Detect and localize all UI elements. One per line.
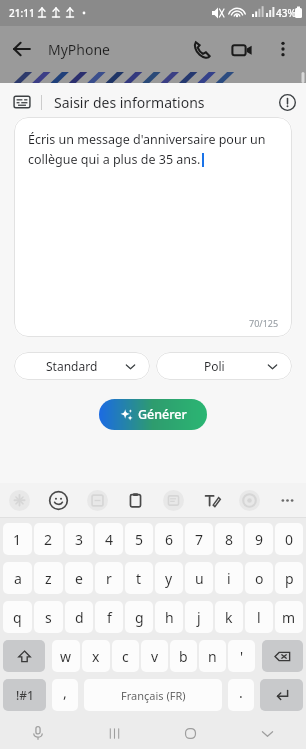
button[interactable]: Poli (156, 352, 292, 380)
button[interactable]: m (275, 601, 303, 633)
staticText: s (45, 608, 52, 627)
button[interactable]: r (95, 562, 123, 594)
button[interactable]: z (34, 562, 63, 594)
button[interactable]: n (199, 640, 226, 672)
staticText: , (63, 683, 67, 702)
button[interactable]: f (95, 601, 123, 633)
button[interactable]: Information (279, 94, 296, 111)
staticText: . (239, 683, 243, 702)
button[interactable]: ' (228, 640, 255, 672)
button[interactable]: s (34, 601, 63, 633)
staticText: h (165, 608, 174, 627)
button[interactable]: Sticker (78, 483, 116, 517)
staticText: i (227, 569, 231, 588)
button[interactable]: t (125, 562, 153, 594)
button[interactable]: d (65, 601, 93, 633)
button[interactable]: 2 (34, 523, 63, 555)
button[interactable]: 5 (125, 523, 153, 555)
button[interactable]: k (215, 601, 243, 633)
staticText: collègue qui a plus de 35 ans. (28, 151, 201, 168)
button[interactable]: j (185, 601, 213, 633)
button[interactable]: More options (272, 38, 294, 60)
button[interactable]: Clipboard (116, 483, 154, 517)
button[interactable]: w (52, 640, 80, 672)
button[interactable]: y (155, 562, 183, 594)
button[interactable]: . (228, 679, 254, 711)
button[interactable]: Home (152, 717, 229, 749)
button[interactable]: Settings (230, 483, 268, 517)
button[interactable]: Call (190, 37, 214, 61)
button[interactable]: Emoji (39, 483, 78, 517)
button[interactable]: 6 (155, 523, 183, 555)
staticText: Français (FR) (121, 688, 186, 703)
staticText: Poli (204, 358, 225, 374)
staticText: 8 (225, 530, 234, 549)
staticText: Écris un message d'anniversaire pour un (28, 131, 266, 148)
button[interactable]: h (155, 601, 183, 633)
staticText: l (257, 608, 261, 627)
staticText: 4 (105, 530, 114, 549)
button[interactable]: , (52, 679, 78, 711)
staticText: Standard (46, 358, 98, 374)
button[interactable]: 9 (245, 523, 273, 555)
staticText: q (13, 608, 22, 627)
button[interactable]: Shift (3, 640, 45, 672)
button[interactable]: 7 (185, 523, 213, 555)
button[interactable]: Écris un message d'anniversaire pour un (14, 117, 292, 337)
staticText: d (75, 608, 84, 627)
button[interactable]: i (215, 562, 243, 594)
button[interactable]: Voice input (0, 717, 76, 749)
staticText: 5 (135, 530, 144, 549)
button[interactable]: Hide keyboard (229, 717, 306, 749)
staticText: 1 (13, 530, 22, 549)
button[interactable]: c (112, 640, 139, 672)
button[interactable]: q (3, 601, 32, 633)
button[interactable]: 1 (3, 523, 32, 555)
button[interactable]: Recent apps (76, 717, 152, 749)
button[interactable]: e (65, 562, 93, 594)
button[interactable]: p (275, 562, 303, 594)
staticText: 21:11 (9, 6, 35, 20)
button[interactable]: Back (8, 35, 36, 63)
staticText: 0 (285, 530, 294, 549)
button[interactable]: 0 (275, 523, 303, 555)
button[interactable]: o (245, 562, 273, 594)
button[interactable]: Générer (99, 399, 207, 430)
button[interactable]: 3 (65, 523, 93, 555)
staticText: 7 (195, 530, 204, 549)
staticText: o (255, 569, 264, 588)
staticText: 70/125 (249, 317, 279, 329)
staticText: w (60, 647, 72, 666)
button[interactable]: u (185, 562, 213, 594)
button[interactable]: Enter (260, 679, 303, 711)
button[interactable]: g (125, 601, 153, 633)
button[interactable]: Magic (0, 483, 39, 517)
button[interactable]: 8 (215, 523, 243, 555)
button[interactable]: x (82, 640, 110, 672)
staticText: t (136, 569, 142, 588)
staticText: 3 (75, 530, 84, 549)
staticText: v (151, 647, 159, 666)
button[interactable]: Keyboard input (13, 93, 31, 111)
button[interactable]: l (245, 601, 273, 633)
staticText: Générer (138, 406, 187, 423)
staticText: u (195, 569, 204, 588)
staticText: y (165, 569, 173, 588)
button[interactable]: 4 (95, 523, 123, 555)
button[interactable]: v (141, 640, 168, 672)
button[interactable]: Standard (14, 352, 150, 380)
button[interactable]: b (170, 640, 197, 672)
staticText: x (92, 647, 100, 666)
button[interactable]: Translate (154, 483, 192, 517)
button[interactable]: Français (FR) (84, 679, 222, 711)
button[interactable]: Video call (230, 38, 254, 62)
staticText: 2 (44, 530, 53, 549)
button[interactable]: Handwriting (192, 483, 230, 517)
staticText: c (122, 647, 129, 666)
button[interactable]: Backspace (262, 640, 303, 672)
button[interactable]: !#1 (3, 679, 46, 711)
staticText: m (282, 608, 296, 627)
staticText: b (179, 647, 188, 666)
button[interactable]: a (3, 562, 32, 594)
button[interactable]: More (268, 483, 306, 517)
